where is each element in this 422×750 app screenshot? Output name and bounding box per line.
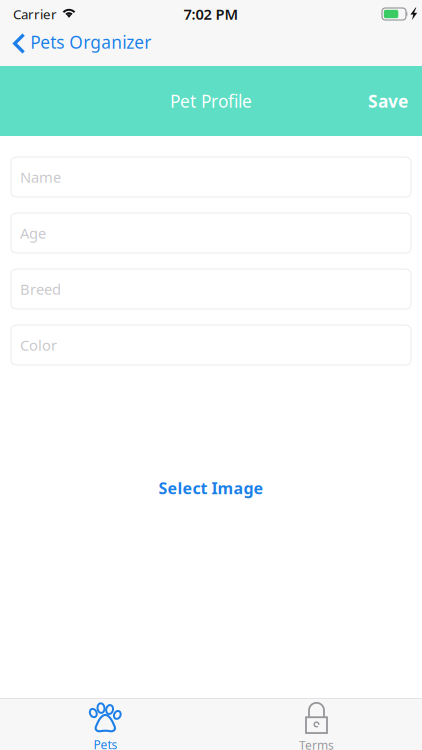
button[interactable]: Pets	[0, 699, 211, 750]
staticText: Age	[20, 223, 46, 243]
button[interactable]: Save	[358, 79, 422, 123]
staticText: Name	[20, 167, 61, 187]
staticText: Select Image	[158, 477, 263, 499]
staticText: Pets	[93, 736, 117, 750]
staticText: Color	[20, 335, 57, 355]
staticText: 7:02 PM	[183, 4, 238, 24]
button[interactable]: Name	[11, 157, 411, 197]
staticText: Pet Profile	[170, 89, 252, 112]
button[interactable]: Age	[11, 213, 411, 253]
staticText: Breed	[20, 279, 61, 299]
staticText: Terms	[299, 737, 334, 750]
button[interactable]: Breed	[11, 269, 411, 309]
button[interactable]: Pets Organizer	[0, 28, 161, 66]
button[interactable]: Select Image	[158, 477, 263, 499]
staticText: Carrier	[13, 5, 57, 23]
button[interactable]: Color	[11, 325, 411, 365]
staticText: Save	[368, 89, 408, 112]
button[interactable]: Terms	[211, 699, 422, 750]
staticText: Pets Organizer	[30, 30, 151, 53]
